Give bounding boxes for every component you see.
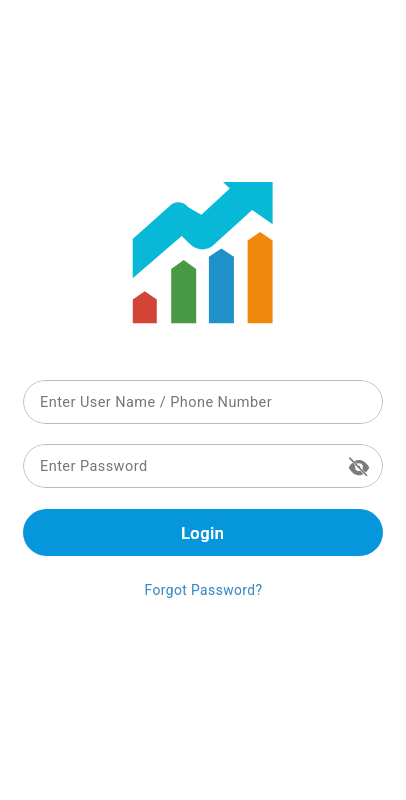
staticText: Forgot Password? [144,582,263,598]
button[interactable]: Enter User Name / Phone Number [23,380,383,424]
staticText: Enter Password [40,458,148,475]
button[interactable]: Show password [344,451,374,481]
button[interactable]: Enter Password [23,444,383,488]
button[interactable]: Login [23,509,383,556]
button[interactable]: Forgot Password? [136,578,271,602]
staticText: Login [181,524,225,543]
staticText: Enter User Name / Phone Number [40,394,273,411]
